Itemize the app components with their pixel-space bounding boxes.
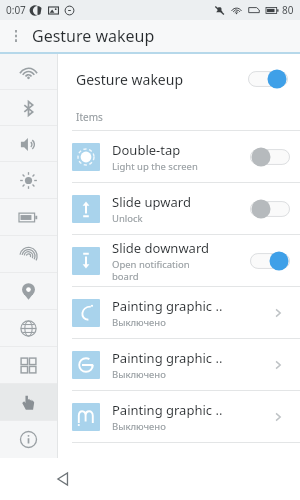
staticText: Gesture wakeup [76,70,184,89]
button[interactable]: Painting graphic .. [58,287,300,338]
button[interactable]: Gesture wakeup [58,54,300,104]
staticText: Выключено [112,420,166,433]
button[interactable]: Apps [0,347,57,384]
staticText: 80 [282,3,294,17]
button[interactable]: Location [0,273,57,310]
staticText: 0:07 [6,3,26,17]
button[interactable]: Wi-Fi [0,54,57,90]
staticText: Open notification board [112,258,190,282]
button[interactable]: Fingerprint [0,236,57,273]
button[interactable]: Bluetooth [0,90,57,126]
button[interactable] [250,198,290,220]
staticText: Slide downward [112,239,210,257]
staticText: Double-tap [112,141,181,159]
staticText: Slide upward [112,193,191,211]
button[interactable]: Gestures [0,384,57,421]
staticText: Выключено [112,368,166,381]
staticText: Выключено [112,316,166,329]
button[interactable] [250,250,290,272]
button[interactable]: Slide upward [58,183,300,234]
staticText: Painting graphic .. [112,401,223,419]
button[interactable]: Network [0,310,57,347]
staticText: Gesture wakeup [32,25,155,47]
button[interactable]: Painting graphic .. [58,391,300,442]
button[interactable]: About [0,421,57,458]
button[interactable] [250,146,290,168]
staticText: Items [76,110,103,124]
button[interactable]: Menu [0,20,32,52]
button[interactable]: Slide downward [58,235,300,286]
button[interactable]: Painting graphic .. [58,339,300,390]
button[interactable] [248,68,288,90]
button[interactable]: Double-tap [58,131,300,182]
button[interactable]: Battery [0,199,57,236]
staticText: Painting graphic .. [112,349,223,367]
staticText: Light up the screen [112,160,198,173]
button[interactable]: Sound [0,126,57,162]
button[interactable]: Display [0,162,57,199]
button[interactable]: Back [48,464,78,494]
staticText: Unlock [112,212,143,225]
staticText: Painting graphic .. [112,297,223,315]
